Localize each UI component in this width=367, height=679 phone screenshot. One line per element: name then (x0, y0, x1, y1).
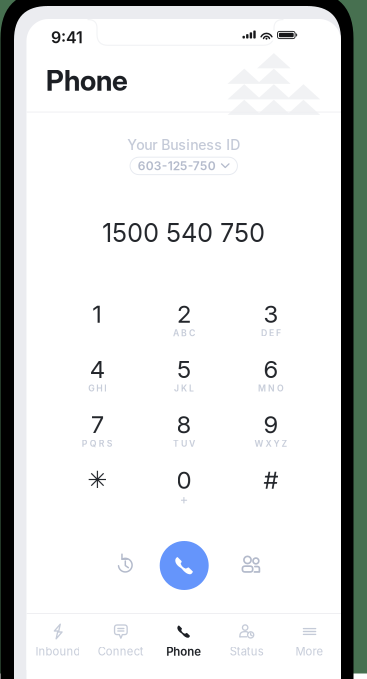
button[interactable]: 1 (54, 299, 141, 354)
staticText: Phone (166, 645, 201, 658)
staticText: Status (230, 645, 264, 658)
staticText: 9 (263, 410, 278, 439)
staticText: 7 (91, 410, 104, 439)
staticText: + (179, 491, 188, 507)
staticText: # (263, 465, 278, 494)
button[interactable]: 5 (141, 354, 227, 410)
staticText: T U V (173, 438, 195, 449)
staticText: M N O (258, 383, 284, 394)
button[interactable]: Inbound (26, 620, 89, 670)
staticText: Your Business ID (127, 136, 240, 153)
staticText: 0 (176, 465, 191, 494)
button[interactable]: Connect (89, 620, 152, 670)
button[interactable]: ✳ (54, 465, 141, 520)
staticText: 4 (90, 355, 105, 384)
staticText: W X Y Z (254, 438, 287, 449)
staticText: 1 (92, 299, 102, 328)
button[interactable]: 7 (54, 410, 141, 465)
button[interactable]: 0 (141, 465, 227, 520)
button[interactable]: 9 (227, 410, 314, 465)
button[interactable]: Status (215, 620, 278, 670)
staticText: 3 (263, 299, 278, 328)
staticText: ✳ (87, 466, 107, 494)
button[interactable]: 6 (227, 354, 314, 410)
button[interactable]: # (227, 465, 314, 520)
staticText: 603-125-750 (138, 159, 216, 173)
staticText: Inbound (35, 645, 80, 658)
button[interactable]: 4 (54, 354, 141, 410)
staticText: G H I (88, 383, 106, 394)
staticText: Connect (98, 645, 144, 658)
button[interactable]: Phone (152, 620, 215, 670)
staticText: J K L (174, 383, 194, 394)
button[interactable]: Contacts (217, 546, 285, 582)
staticText: More (296, 645, 324, 658)
button[interactable]: 8 (141, 410, 227, 465)
button[interactable]: 603-125-750 (130, 157, 237, 175)
staticText: 6 (263, 355, 278, 384)
staticText: P Q R S (82, 438, 113, 449)
button[interactable]: Call (160, 541, 209, 590)
staticText: 2 (177, 299, 191, 328)
staticText: 9:41 (51, 28, 83, 47)
button[interactable]: 2 (141, 299, 227, 354)
staticText: D E F (261, 328, 281, 338)
staticText: Phone (46, 64, 128, 97)
staticText: 8 (176, 410, 191, 439)
staticText: A B C (173, 328, 195, 338)
button[interactable]: More (278, 620, 341, 670)
staticText: 5 (177, 355, 191, 384)
button[interactable]: 3 (227, 299, 314, 354)
button[interactable]: Recents (90, 546, 158, 582)
staticText: 1500 540 750 (102, 218, 265, 248)
